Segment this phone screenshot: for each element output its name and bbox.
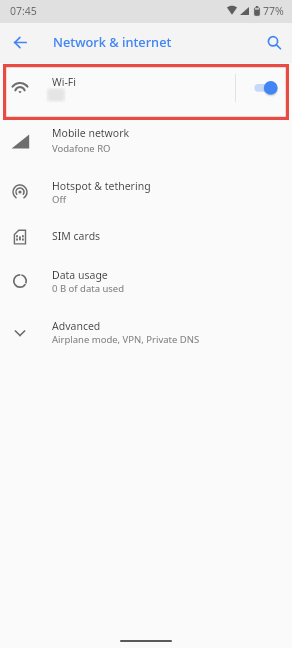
button[interactable]: SIM cards [0, 222, 292, 261]
button[interactable] [0, 64, 292, 120]
button[interactable]: Mobile network [0, 120, 292, 171]
button[interactable]: Navigate up [8, 31, 32, 55]
staticText: Data usage [52, 268, 108, 282]
staticText: Hotspot & tethering [52, 179, 151, 193]
staticText: Mobile network [52, 126, 130, 140]
button[interactable]: Wi-Fi toggle [248, 64, 288, 120]
staticText: Vodafone RO [52, 142, 111, 155]
button[interactable]: Search [261, 30, 285, 54]
staticText: 77% [263, 4, 284, 18]
staticText: 07:45 [10, 4, 37, 18]
staticText: Network & internet [53, 33, 172, 50]
button[interactable]: Advanced [0, 312, 292, 363]
staticText: Airplane mode, VPN, Private DNS [52, 333, 200, 346]
staticText: Off [52, 193, 66, 206]
staticText: SIM cards [52, 229, 101, 243]
staticText: Wi-Fi [52, 75, 77, 89]
staticText: Advanced [52, 319, 101, 333]
staticText: 0 B of data used [52, 282, 125, 295]
button[interactable]: Hotspot & tethering [0, 171, 292, 222]
button[interactable]: Data usage [0, 261, 292, 312]
